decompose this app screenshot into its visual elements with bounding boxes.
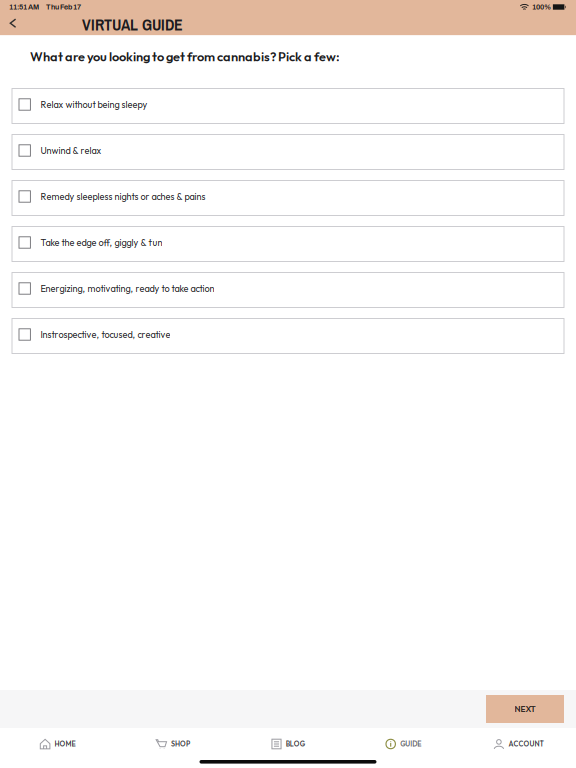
staticText: BLOG bbox=[286, 739, 305, 748]
staticText: VIRTUAL GUIDE bbox=[82, 14, 183, 35]
staticText: Relax without being sleepy bbox=[40, 99, 147, 110]
staticText: Take the edge off, giggly & fun bbox=[40, 237, 162, 248]
staticText: Instrospective, focused, creative bbox=[40, 329, 170, 340]
staticText: Remedy sleepless nights or aches & pains bbox=[40, 191, 205, 202]
button[interactable]: HOME bbox=[0, 732, 115, 756]
button[interactable]: Relax without being sleepy bbox=[12, 88, 564, 123]
button[interactable]: ACCOUNT bbox=[461, 732, 576, 756]
staticText: NEXT bbox=[514, 704, 535, 714]
button[interactable]: GUIDE bbox=[346, 732, 461, 756]
button[interactable]: Energizing, motivating, ready to take ac… bbox=[12, 272, 564, 307]
button[interactable]: Remedy sleepless nights or aches & pains bbox=[12, 180, 564, 215]
button[interactable]: SHOP bbox=[115, 732, 230, 756]
staticText: Thu Feb 17 bbox=[46, 3, 81, 11]
staticText: HOME bbox=[55, 739, 76, 748]
staticText: Energizing, motivating, ready to take ac… bbox=[40, 283, 214, 294]
button[interactable]: BLOG bbox=[230, 732, 346, 756]
button[interactable]: NEXT bbox=[486, 695, 564, 723]
button[interactable]: Back bbox=[0, 14, 22, 35]
staticText: SHOP bbox=[171, 739, 190, 748]
button[interactable]: Unwind & relax bbox=[12, 134, 564, 169]
staticText: GUIDE bbox=[400, 739, 421, 748]
staticText: What are you looking to get from cannabi… bbox=[30, 48, 340, 64]
button[interactable]: Instrospective, focused, creative bbox=[12, 318, 564, 353]
staticText: 100% bbox=[532, 3, 551, 11]
staticText: Unwind & relax bbox=[40, 145, 101, 156]
staticText: 11:51 AM bbox=[9, 3, 39, 11]
staticText: ACCOUNT bbox=[508, 739, 543, 748]
button[interactable]: Take the edge off, giggly & fun bbox=[12, 226, 564, 261]
